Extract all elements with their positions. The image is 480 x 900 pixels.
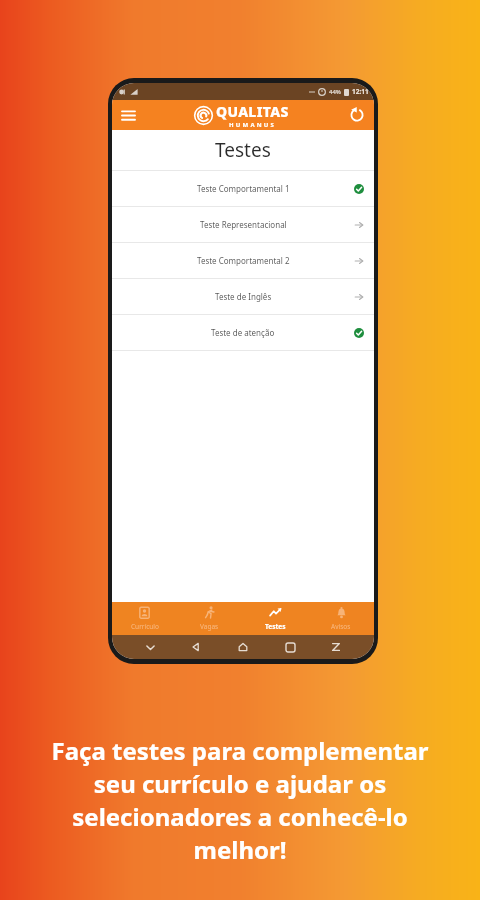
staticText: Vagas bbox=[200, 622, 219, 631]
staticText: 44% bbox=[329, 88, 341, 96]
button[interactable]: Teste Comportamental 1 bbox=[112, 171, 374, 206]
button[interactable]: Vagas bbox=[177, 606, 242, 631]
staticText: Teste de Inglês bbox=[215, 291, 272, 302]
staticText: Teste Comportamental 1 bbox=[197, 183, 290, 194]
button[interactable]: Refresh bbox=[346, 104, 368, 126]
button[interactable]: Hide bbox=[141, 638, 159, 656]
button[interactable]: Recents bbox=[281, 638, 299, 656]
staticText: Teste Comportamental 2 bbox=[197, 255, 290, 266]
staticText: Testes bbox=[215, 137, 271, 163]
staticText: Teste Representacional bbox=[200, 219, 287, 230]
button[interactable]: Teste Representacional bbox=[112, 207, 374, 242]
staticText: Faça testes para complementar seu curríc… bbox=[51, 734, 429, 866]
staticText: Currículo bbox=[131, 622, 159, 631]
button[interactable]: Teste de Inglês bbox=[112, 279, 374, 314]
staticText: Avisos bbox=[331, 622, 351, 631]
button[interactable]: Teste Comportamental 2 bbox=[112, 243, 374, 278]
staticText: Teste de atenção bbox=[211, 327, 275, 338]
staticText: HUMANUS bbox=[229, 121, 277, 129]
button[interactable]: Currículo bbox=[112, 606, 177, 631]
button[interactable]: Teste de atenção bbox=[112, 315, 374, 350]
button[interactable]: Screenshot bbox=[327, 638, 345, 656]
button[interactable]: Avisos bbox=[308, 606, 374, 631]
staticText: QUALITAS bbox=[216, 102, 289, 121]
button[interactable]: Home bbox=[234, 638, 252, 656]
button[interactable]: Testes bbox=[242, 606, 308, 631]
button[interactable]: Back bbox=[187, 638, 205, 656]
staticText: Testes bbox=[265, 622, 286, 631]
staticText: 12:11 bbox=[352, 87, 369, 96]
button[interactable]: Menu bbox=[117, 104, 139, 126]
